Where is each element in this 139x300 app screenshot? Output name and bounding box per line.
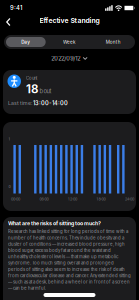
staticText: 2022/09/12 (51, 55, 80, 62)
button[interactable]: Week (48, 35, 91, 49)
staticText: 13:00-14:00 (33, 100, 68, 107)
staticText: bout (39, 87, 51, 94)
staticText: What are the risks of sitting too much? (8, 220, 101, 226)
staticText: 1 (8, 137, 9, 141)
staticText: 24:00 (125, 197, 134, 201)
staticText: Count (26, 76, 37, 81)
staticText: 9:41 (10, 4, 22, 11)
button[interactable]: 2022/09/12 (51, 49, 88, 65)
staticText: 00:00 (11, 197, 20, 201)
staticText: 12:00 (68, 197, 77, 201)
staticText: Day (21, 39, 30, 45)
button[interactable]: Back (0, 18, 11, 26)
button[interactable]: Month (91, 35, 135, 49)
staticText: Week (63, 39, 76, 45)
staticText: Effective Standing (39, 16, 99, 25)
staticText: 18:00 (96, 197, 105, 201)
staticText: Month (106, 39, 121, 45)
staticText: 18 (26, 82, 38, 96)
staticText: Research has linked sitting for long per… (8, 229, 131, 291)
staticText: 0 (8, 184, 10, 189)
staticText: Last time: (8, 100, 33, 106)
staticText: 06:00 (39, 197, 48, 201)
button[interactable]: Day (4, 35, 48, 49)
